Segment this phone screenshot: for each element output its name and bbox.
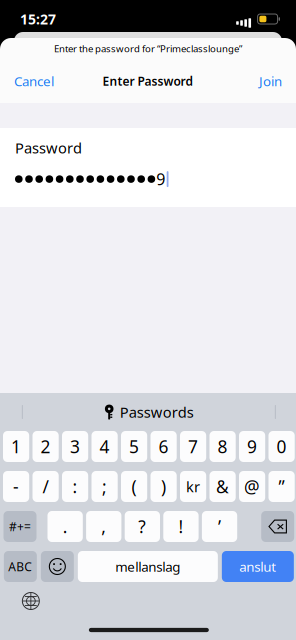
staticText: Password bbox=[15, 138, 82, 157]
button[interactable]: ABC bbox=[4, 551, 37, 582]
button[interactable]: Cancel bbox=[0, 59, 68, 103]
staticText: ) bbox=[161, 475, 166, 498]
staticText: 0 bbox=[277, 435, 287, 458]
staticText: ” bbox=[279, 475, 285, 498]
staticText: ( bbox=[132, 475, 137, 498]
button[interactable]: Delete bbox=[261, 511, 294, 542]
button[interactable]: - bbox=[3, 471, 29, 502]
button[interactable]: 2 bbox=[32, 431, 59, 462]
staticText: anslut bbox=[239, 558, 276, 575]
button[interactable]: ( bbox=[121, 471, 147, 502]
button[interactable]: ; bbox=[91, 471, 118, 502]
staticText: : bbox=[73, 475, 78, 498]
staticText: kr bbox=[186, 477, 200, 496]
staticText: Join bbox=[259, 72, 282, 90]
button[interactable]: ’ bbox=[202, 511, 237, 542]
button[interactable]: 6 bbox=[150, 431, 177, 462]
button[interactable]: #+= bbox=[3, 511, 36, 542]
staticText: - bbox=[13, 475, 19, 498]
staticText: 4 bbox=[100, 435, 110, 458]
staticText: 15:27 bbox=[20, 9, 56, 29]
button[interactable]: 9 bbox=[239, 431, 265, 462]
button[interactable]: ? bbox=[125, 511, 160, 542]
staticText: 6 bbox=[159, 435, 169, 458]
staticText: ’ bbox=[218, 515, 221, 538]
button[interactable]: kr bbox=[180, 471, 206, 502]
staticText: 2 bbox=[41, 435, 51, 458]
staticText: Cancel bbox=[14, 72, 54, 90]
staticText: Enter Password bbox=[102, 73, 193, 89]
button[interactable]: 3 bbox=[62, 431, 88, 462]
button[interactable]: Emoji bbox=[41, 551, 74, 582]
staticText: 1 bbox=[11, 435, 21, 458]
button[interactable]: Join bbox=[245, 59, 296, 103]
staticText: ! bbox=[178, 515, 183, 538]
button[interactable]: 4 bbox=[91, 431, 118, 462]
staticText: 5 bbox=[129, 435, 139, 458]
staticText: @ bbox=[244, 475, 260, 498]
staticText: #+= bbox=[9, 518, 31, 534]
staticText: 9 bbox=[247, 435, 257, 458]
staticText: 3 bbox=[70, 435, 80, 458]
button[interactable]: ) bbox=[150, 471, 177, 502]
button[interactable]: & bbox=[209, 471, 236, 502]
button[interactable]: @ bbox=[239, 471, 265, 502]
staticText: / bbox=[43, 475, 49, 498]
button[interactable]: 1 bbox=[3, 431, 29, 462]
staticText: Enter the password for “Primeclasslounge… bbox=[54, 42, 242, 55]
staticText: . bbox=[63, 515, 68, 538]
button[interactable]: , bbox=[86, 511, 121, 542]
button[interactable]: 5 bbox=[121, 431, 147, 462]
staticText: 9 bbox=[156, 168, 165, 190]
staticText: ? bbox=[138, 515, 146, 538]
button[interactable]: 8 bbox=[209, 431, 236, 462]
staticText: 8 bbox=[218, 435, 228, 458]
button[interactable]: 7 bbox=[180, 431, 206, 462]
staticText: Passwords bbox=[120, 402, 194, 422]
staticText: ABC bbox=[8, 558, 32, 574]
staticText: & bbox=[216, 475, 229, 498]
staticText: 7 bbox=[188, 435, 198, 458]
button[interactable]: anslut bbox=[222, 551, 294, 582]
staticText: mellanslag bbox=[115, 558, 180, 575]
button[interactable]: mellanslag bbox=[78, 551, 218, 582]
staticText: ; bbox=[102, 475, 107, 498]
staticText: , bbox=[101, 515, 106, 538]
button[interactable]: ” bbox=[268, 471, 295, 502]
button[interactable]: . bbox=[47, 511, 83, 542]
button[interactable]: Next keyboard bbox=[20, 590, 42, 612]
button[interactable]: 0 bbox=[268, 431, 295, 462]
button[interactable]: ! bbox=[163, 511, 199, 542]
button[interactable]: / bbox=[32, 471, 59, 502]
button[interactable]: Passwords bbox=[104, 394, 194, 430]
button[interactable]: : bbox=[62, 471, 88, 502]
